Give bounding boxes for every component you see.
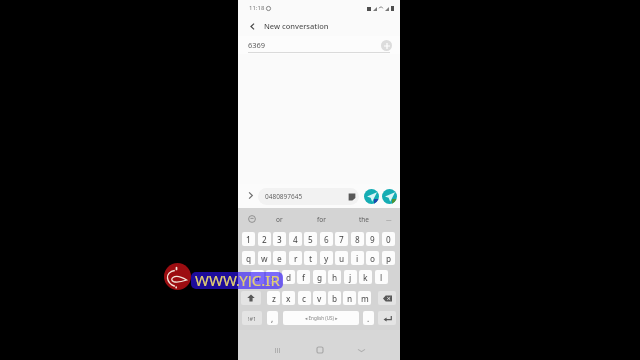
button[interactable]: x <box>282 291 295 305</box>
staticText: h <box>332 272 338 283</box>
staticText: q <box>246 253 252 264</box>
button[interactable]: , <box>267 311 278 325</box>
staticText: 9 <box>370 234 375 245</box>
staticText: c <box>302 293 307 304</box>
button[interactable]: z <box>267 291 280 305</box>
button[interactable]: i <box>351 251 364 265</box>
button[interactable]: 9 <box>366 232 379 246</box>
button[interactable]: q <box>242 251 255 265</box>
button[interactable]: d <box>282 270 295 284</box>
staticText: i <box>356 253 359 264</box>
button[interactable]: l <box>375 270 388 284</box>
staticText: d <box>286 272 292 283</box>
staticText: v <box>317 293 322 304</box>
button[interactable]: 5 <box>304 232 317 246</box>
button[interactable]: 1 <box>242 232 255 246</box>
button[interactable]: 8 <box>351 232 364 246</box>
staticText: or <box>276 215 283 224</box>
button[interactable]: k <box>359 270 372 284</box>
button[interactable]: r <box>289 251 302 265</box>
button[interactable]: a <box>251 270 264 284</box>
button[interactable]: Voice input <box>248 215 256 223</box>
button[interactable]: m <box>358 291 371 305</box>
staticText: 0480897645 <box>265 192 348 201</box>
staticText: 11:18 <box>249 4 265 12</box>
button[interactable]: o <box>366 251 379 265</box>
staticText: j <box>349 272 352 283</box>
button[interactable]: Shift <box>241 291 261 305</box>
staticText: y <box>324 253 329 264</box>
staticText: the <box>359 215 370 224</box>
staticText: w <box>261 253 268 264</box>
staticText: 7 <box>339 234 344 245</box>
button[interactable]: s <box>266 270 279 284</box>
button[interactable]: 0480897645 <box>258 188 359 205</box>
button[interactable]: h <box>328 270 341 284</box>
staticText: 2 <box>262 234 267 245</box>
button[interactable]: More options <box>243 188 257 202</box>
button[interactable]: 4 <box>289 232 302 246</box>
button[interactable]: . <box>363 311 374 325</box>
button[interactable]: n <box>343 291 356 305</box>
staticText: f <box>302 272 305 283</box>
button[interactable]: Symbols <box>242 311 262 325</box>
staticText: p <box>386 253 392 264</box>
button[interactable]: the <box>352 208 376 230</box>
button[interactable]: 6 <box>320 232 333 246</box>
button[interactable]: Send <box>364 189 379 204</box>
staticText: o <box>370 253 376 264</box>
button[interactable]: 3 <box>273 232 286 246</box>
staticText: 5 <box>308 234 313 245</box>
button[interactable]: for <box>309 208 333 230</box>
staticText: m <box>361 293 369 304</box>
staticText: e <box>277 253 282 264</box>
staticText: ◂ English (US) ▸ <box>305 315 338 321</box>
staticText: n <box>347 293 353 304</box>
staticText: g <box>317 272 323 283</box>
staticText: 4 <box>293 234 298 245</box>
button[interactable]: j <box>344 270 357 284</box>
button[interactable]: v <box>313 291 326 305</box>
button[interactable]: or <box>267 208 291 230</box>
staticText: 6369 <box>248 40 266 50</box>
staticText: New conversation <box>264 21 329 31</box>
button[interactable]: g <box>313 270 326 284</box>
button[interactable]: u <box>335 251 348 265</box>
staticText: x <box>286 293 291 304</box>
staticText: l <box>380 272 383 283</box>
button[interactable]: Recents <box>269 342 285 358</box>
button[interactable]: t <box>304 251 317 265</box>
button[interactable]: Space, English (US) <box>283 311 359 325</box>
button[interactable]: b <box>328 291 341 305</box>
staticText: t <box>309 253 313 264</box>
staticText: b <box>332 293 338 304</box>
button[interactable]: w <box>258 251 271 265</box>
button[interactable]: 7 <box>335 232 348 246</box>
staticText: u <box>339 253 345 264</box>
button[interactable]: Send <box>382 189 397 204</box>
button[interactable]: p <box>382 251 395 265</box>
staticText: k <box>363 272 368 283</box>
button[interactable]: Back <box>246 20 259 33</box>
button[interactable]: e <box>273 251 286 265</box>
staticText: WWW.YJC.IR <box>195 272 280 287</box>
button[interactable]: Add recipient <box>381 40 392 51</box>
button[interactable]: f <box>297 270 310 284</box>
staticText: r <box>294 253 298 264</box>
staticText: 3 <box>277 234 282 245</box>
button[interactable]: Backspace <box>378 291 396 305</box>
button[interactable]: Home <box>312 342 328 358</box>
staticText: 6 <box>324 234 329 245</box>
button[interactable]: Enter <box>378 311 396 325</box>
staticText: s <box>271 272 275 283</box>
button[interactable]: y <box>320 251 333 265</box>
staticText: !#1 <box>248 315 257 322</box>
button[interactable]: c <box>298 291 311 305</box>
button[interactable]: Back <box>353 342 369 358</box>
staticText: , <box>271 313 274 324</box>
staticText: a <box>255 272 260 283</box>
staticText: 1 <box>246 234 251 245</box>
staticText: for <box>317 215 326 224</box>
button[interactable]: 2 <box>258 232 271 246</box>
button[interactable]: 0 <box>382 232 395 246</box>
